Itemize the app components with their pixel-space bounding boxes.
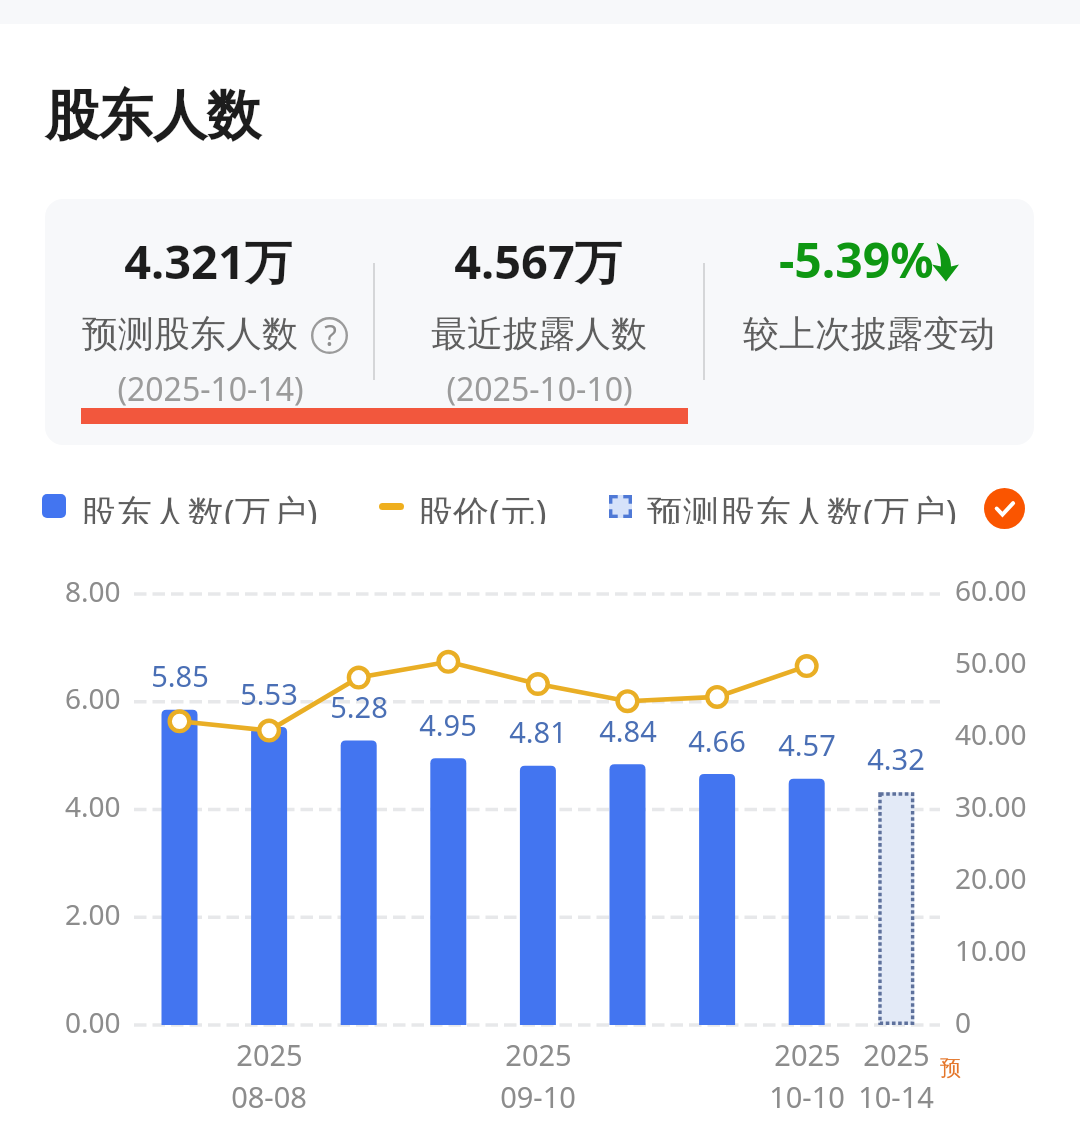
- staticText: 最近披露人数: [431, 311, 647, 356]
- staticText: 60.00: [955, 571, 1027, 609]
- staticText: 5.85: [151, 656, 209, 695]
- staticText: (2025-10-10): [446, 367, 633, 411]
- staticText: 2025: [236, 1035, 303, 1074]
- staticText: 5.28: [330, 687, 388, 726]
- staticText: 股价(元): [417, 488, 547, 524]
- staticText: 0.00: [65, 1003, 121, 1041]
- button[interactable]: 预测股东人数(万户): [609, 488, 957, 524]
- staticText: 4.567万: [454, 229, 622, 293]
- staticText: -5.39%: [779, 227, 934, 292]
- staticText: 20.00: [955, 859, 1027, 897]
- staticText: 股东人数: [45, 82, 261, 150]
- staticText: 6.00: [65, 679, 121, 717]
- staticText: 4.321万: [124, 229, 292, 293]
- staticText: 2.00: [65, 895, 121, 933]
- staticText: 4.81: [509, 712, 567, 751]
- staticText: 8.00: [65, 572, 121, 610]
- staticText: 30.00: [955, 787, 1027, 825]
- staticText: ?: [324, 315, 337, 354]
- staticText: 09-10: [500, 1077, 576, 1116]
- staticText: 预测股东人数(万户): [647, 488, 957, 524]
- staticText: 50.00: [955, 643, 1027, 681]
- button[interactable]: 股东人数: [45, 82, 261, 150]
- staticText: 4.95: [419, 705, 477, 744]
- staticText: 10.00: [955, 931, 1027, 969]
- staticText: 0: [955, 1003, 972, 1041]
- button[interactable]: Help: [311, 317, 348, 354]
- staticText: 08-08: [231, 1077, 307, 1116]
- staticText: 2025: [774, 1035, 841, 1074]
- staticText: 2025: [863, 1035, 930, 1074]
- button[interactable]: [45, 199, 1034, 445]
- staticText: 较上次披露变动: [743, 311, 995, 356]
- staticText: 4.32: [867, 739, 925, 778]
- staticText: 10-10: [769, 1077, 845, 1116]
- staticText: 40.00: [955, 715, 1027, 753]
- button[interactable]: 股东人数(万户): [42, 488, 318, 524]
- staticText: 4.84: [599, 711, 657, 750]
- staticText: 预: [940, 1055, 961, 1081]
- staticText: 10-14: [858, 1077, 934, 1116]
- staticText: 预测股东人数: [82, 311, 298, 356]
- staticText: 股东人数(万户): [80, 488, 318, 524]
- staticText: 5.53: [240, 674, 298, 713]
- button[interactable]: Selected: [984, 488, 1025, 529]
- staticText: 2025: [505, 1035, 572, 1074]
- staticText: 4.00: [65, 787, 121, 825]
- staticText: 4.66: [688, 721, 746, 760]
- button[interactable]: 股价(元): [379, 488, 547, 524]
- staticText: (2025-10-14): [117, 367, 304, 411]
- staticText: 4.57: [778, 725, 836, 764]
